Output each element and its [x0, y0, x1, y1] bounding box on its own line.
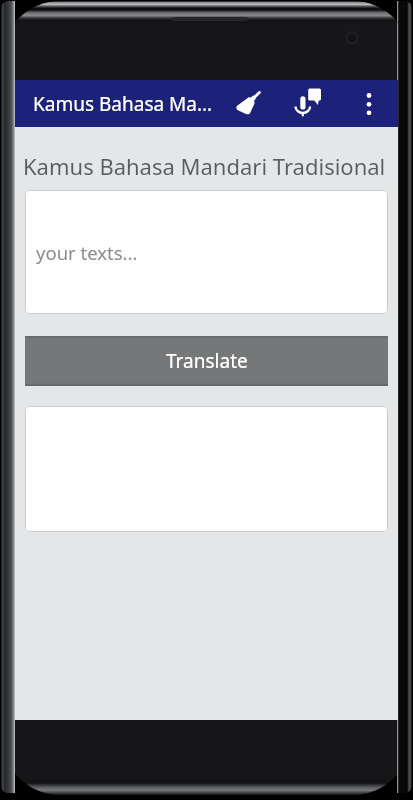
button[interactable]: Clear text — [226, 80, 271, 127]
staticText: your texts... — [36, 240, 138, 265]
staticText: Kamus Bahasa Mandari Tradisional — [23, 151, 386, 181]
staticText: Translate — [166, 348, 248, 374]
staticText: Kamus Bahasa Ma… — [33, 91, 212, 117]
button[interactable]: Translate — [25, 336, 388, 386]
button[interactable]: your texts... — [25, 190, 388, 314]
button[interactable]: More options — [346, 80, 391, 127]
button[interactable]: Voice input — [280, 80, 328, 127]
